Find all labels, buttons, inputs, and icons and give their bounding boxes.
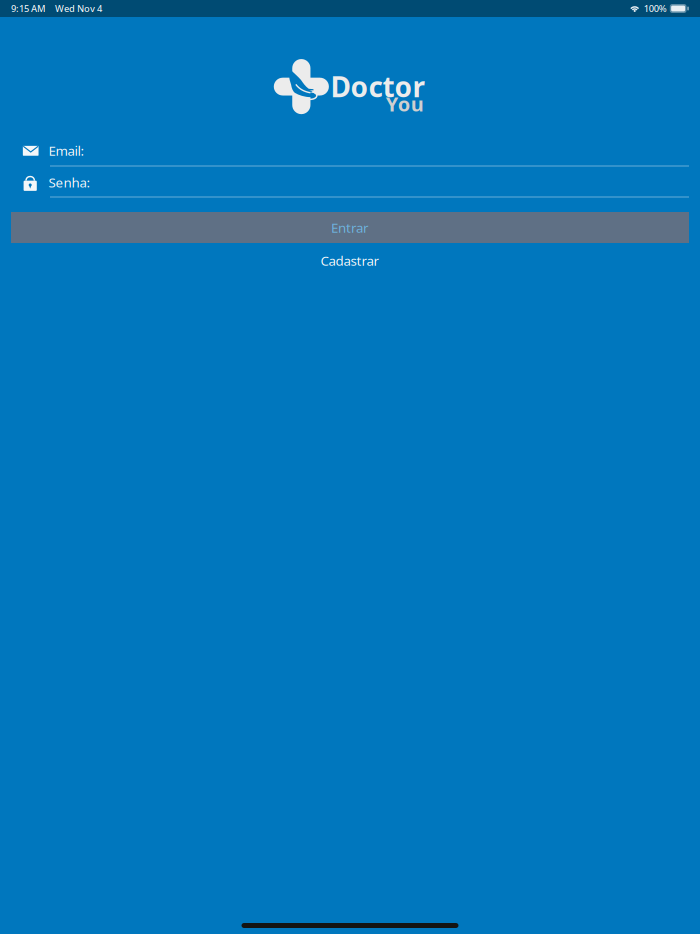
staticText: Email: [49, 142, 85, 159]
staticText: You [386, 90, 424, 117]
button[interactable]: Cadastrar [250, 250, 450, 270]
staticText: Wed Nov 4 [55, 2, 102, 15]
button[interactable]: Senha: [0, 166, 700, 197]
staticText: Doctor [330, 68, 425, 105]
staticText: Entrar [331, 219, 369, 236]
staticText: 100% [644, 2, 667, 15]
button[interactable]: Email: [0, 135, 700, 166]
staticText: Senha: [49, 173, 91, 191]
button[interactable]: Entrar [11, 212, 689, 243]
staticText: Cadastrar [320, 252, 379, 269]
staticText: 9:15 AM [11, 2, 46, 15]
